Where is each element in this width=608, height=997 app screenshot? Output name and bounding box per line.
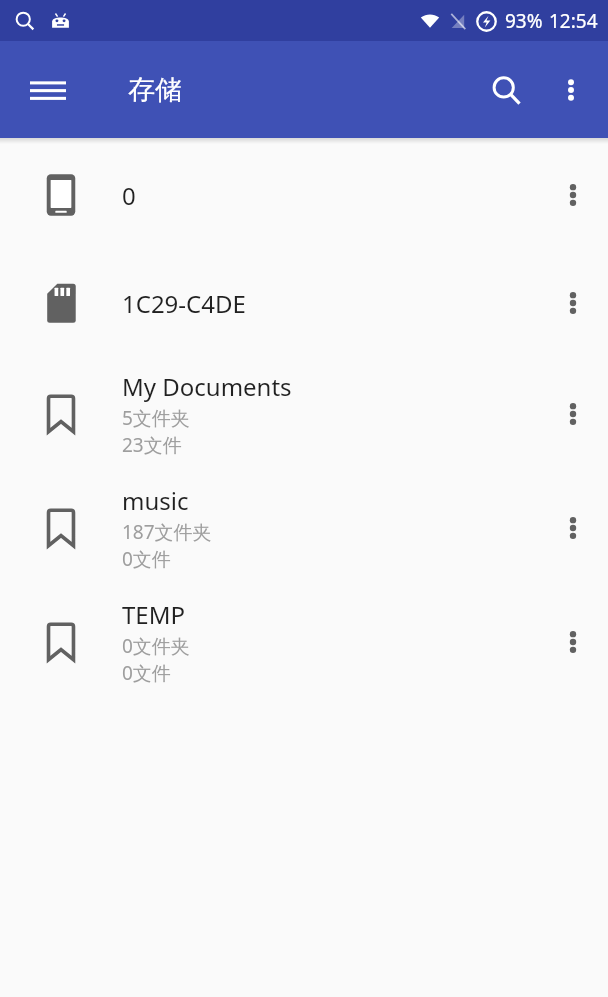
button[interactable]: 1C29-C4DE bbox=[0, 249, 608, 357]
button[interactable]: More options bbox=[540, 59, 602, 121]
staticText: TEMP bbox=[122, 598, 185, 631]
button[interactable]: 0 bbox=[0, 141, 608, 249]
staticText: 0文件 bbox=[122, 546, 171, 572]
button[interactable]: More options for My Documents bbox=[538, 357, 608, 471]
staticText: music bbox=[122, 484, 189, 517]
staticText: 12:54 bbox=[549, 8, 598, 34]
staticText: 23文件 bbox=[122, 432, 182, 458]
button[interactable]: My Documents bbox=[0, 357, 608, 471]
button[interactable]: More options for 1C29-C4DE bbox=[538, 249, 608, 357]
staticText: 0 bbox=[122, 179, 136, 212]
staticText: 93% bbox=[505, 8, 543, 34]
button[interactable]: music bbox=[0, 471, 608, 585]
button[interactable]: TEMP bbox=[0, 585, 608, 699]
staticText: 5文件夹 bbox=[122, 405, 190, 431]
staticText: 0文件 bbox=[122, 660, 171, 686]
button[interactable]: More options for music bbox=[538, 471, 608, 585]
staticText: 187文件夹 bbox=[122, 519, 212, 545]
button[interactable]: More options for TEMP bbox=[538, 585, 608, 699]
button[interactable]: Search bbox=[472, 56, 540, 124]
staticText: 存储 bbox=[128, 73, 182, 107]
staticText: 1C29-C4DE bbox=[122, 287, 246, 320]
button[interactable]: Open navigation drawer bbox=[12, 54, 84, 126]
staticText: My Documents bbox=[122, 370, 292, 403]
staticText: 0文件夹 bbox=[122, 633, 190, 659]
button[interactable]: More options for 0 bbox=[538, 141, 608, 249]
